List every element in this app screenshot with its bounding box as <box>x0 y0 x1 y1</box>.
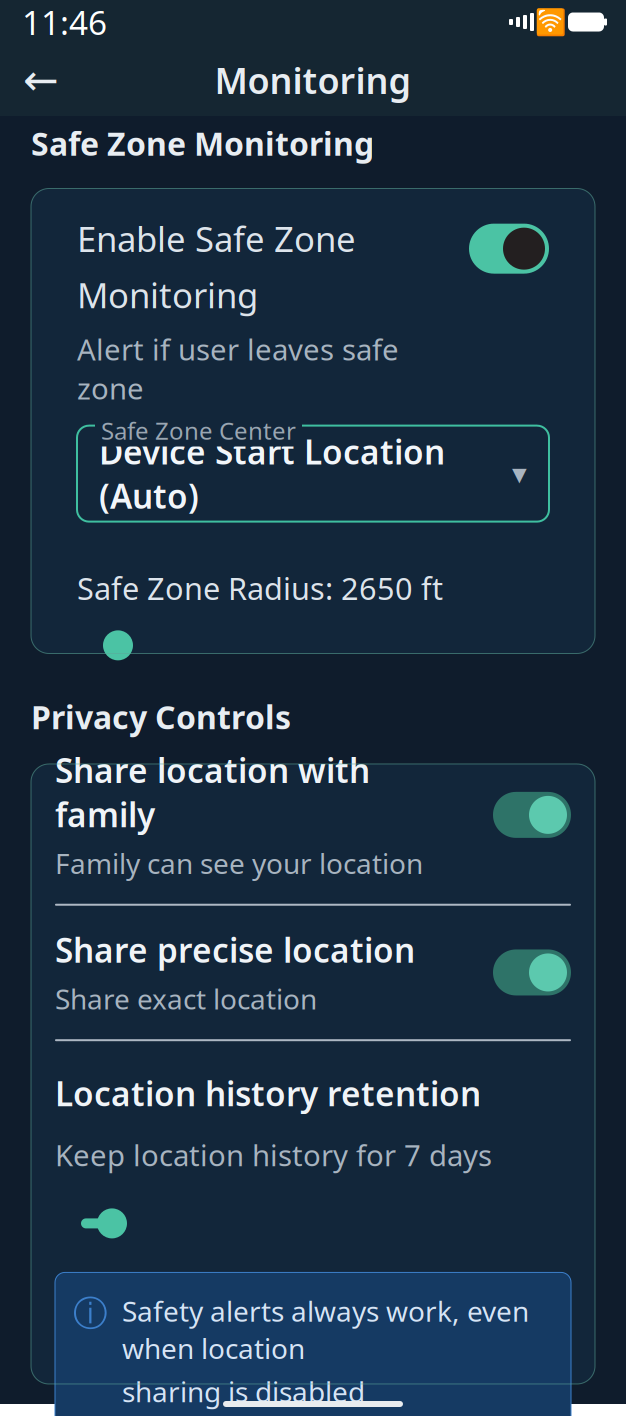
button[interactable]: Share location with family <box>55 726 571 904</box>
staticText: Privacy Controls <box>31 695 291 738</box>
staticText: Monitoring <box>77 272 258 318</box>
staticText: Enable Safe Zone <box>77 216 356 262</box>
staticText: ⓘ <box>73 1292 108 1335</box>
staticText: 🛜 <box>535 7 567 36</box>
staticText: ← <box>23 56 59 104</box>
button[interactable]: Share precise location <box>55 906 571 1039</box>
staticText: Monitoring <box>214 56 411 104</box>
staticText: 11:46 <box>22 0 107 44</box>
staticText: Family can see your location <box>55 845 423 882</box>
staticText: Device Start Location (Auto) <box>99 429 445 518</box>
staticText: Share location with family <box>55 748 370 836</box>
staticText: ▾ <box>512 457 527 490</box>
button[interactable]: Enable Safe Zone Monitoring <box>469 224 549 274</box>
button[interactable]: Device Start Location (Auto) <box>77 426 549 522</box>
staticText: Share exact location <box>55 980 317 1017</box>
button[interactable]: Back <box>14 53 68 107</box>
staticText: Alert if user leaves safe zone <box>77 330 399 408</box>
staticText: Keep location history for 7 days <box>55 1135 492 1174</box>
staticText: Safe Zone Monitoring <box>31 122 374 164</box>
staticText: Safe Zone Center <box>101 415 296 446</box>
staticText: Share precise location <box>55 928 415 972</box>
staticText: sharing is disabled <box>122 1373 365 1410</box>
staticText: Safety alerts always work, even when loc… <box>122 1292 529 1367</box>
staticText: Safe Zone Radius: 2650 ft <box>77 568 443 608</box>
staticText: Location history retention <box>55 1071 481 1115</box>
